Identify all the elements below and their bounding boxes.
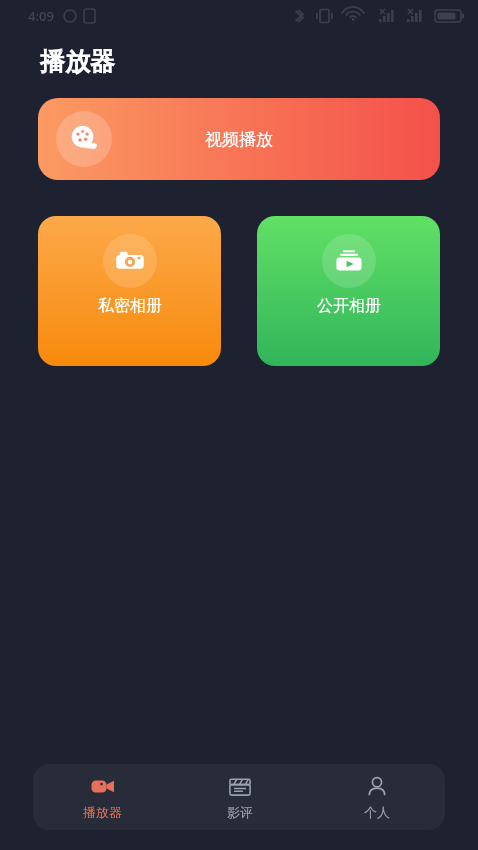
staticText: 个人: [364, 804, 390, 820]
staticText: 影评: [227, 804, 253, 820]
staticText: 私密相册: [98, 296, 162, 316]
button[interactable]: 私密相册: [38, 216, 221, 366]
staticText: 公开相册: [317, 296, 381, 316]
staticText: 播放器: [40, 46, 115, 77]
button[interactable]: 视频播放: [38, 98, 440, 180]
button[interactable]: 公开相册: [257, 216, 440, 366]
button[interactable]: 影评: [171, 767, 308, 828]
staticText: 播放器: [83, 804, 122, 820]
staticText: 视频播放: [205, 129, 273, 150]
staticText: 4:09: [28, 7, 54, 25]
button[interactable]: 个人: [308, 767, 445, 828]
button[interactable]: 播放器: [33, 766, 171, 828]
